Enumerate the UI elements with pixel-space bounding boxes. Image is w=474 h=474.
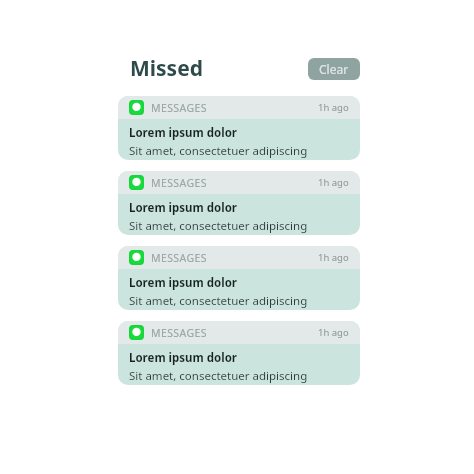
button[interactable]: Messages app icon <box>118 321 360 385</box>
button[interactable]: Clear <box>308 58 360 80</box>
button[interactable]: Messages app icon <box>118 96 360 160</box>
other: Messages app icon <box>129 100 144 115</box>
staticText: 1h ago <box>318 251 349 264</box>
other: Messages app icon <box>129 175 144 190</box>
staticText: MESSAGES <box>151 326 207 340</box>
staticText: Clear <box>319 61 349 77</box>
other: Messages app icon <box>129 325 144 340</box>
button[interactable]: Messages app icon <box>118 246 360 310</box>
other: Messages app icon <box>129 250 144 265</box>
staticText: MESSAGES <box>151 251 207 265</box>
staticText: 1h ago <box>318 176 349 189</box>
staticText: 1h ago <box>318 326 349 339</box>
button[interactable]: Messages app icon <box>118 171 360 235</box>
staticText: MESSAGES <box>151 101 207 115</box>
staticText: Lorem ipsum dolor <box>129 200 237 216</box>
staticText: Lorem ipsum dolor <box>129 350 237 366</box>
staticText: Sit amet, consectetuer adipiscing <box>129 293 308 309</box>
staticText: Sit amet, consectetuer adipiscing <box>129 368 308 384</box>
staticText: Sit amet, consectetuer adipiscing <box>129 143 308 159</box>
staticText: Sit amet, consectetuer adipiscing <box>129 218 308 234</box>
staticText: Lorem ipsum dolor <box>129 275 237 291</box>
staticText: Missed <box>130 54 203 83</box>
staticText: MESSAGES <box>151 176 207 190</box>
staticText: Lorem ipsum dolor <box>129 125 237 141</box>
staticText: 1h ago <box>318 101 349 114</box>
